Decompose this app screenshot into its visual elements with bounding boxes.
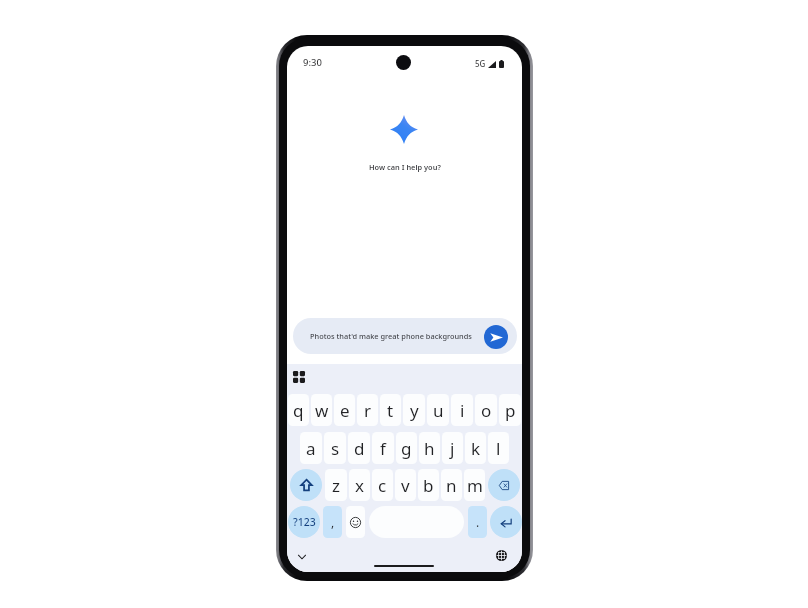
staticText: .: [476, 514, 480, 530]
staticText: ?123: [293, 515, 316, 529]
button[interactable]: Symbols: [288, 506, 320, 538]
button[interactable]: m: [464, 469, 485, 501]
button[interactable]: Send: [484, 325, 508, 349]
staticText: b: [423, 474, 434, 497]
button[interactable]: Space: [369, 506, 464, 538]
staticText: z: [332, 474, 340, 497]
staticText: 5G: [475, 58, 486, 69]
staticText: c: [378, 474, 387, 497]
button[interactable]: i: [451, 394, 473, 426]
staticText: l: [496, 437, 501, 460]
staticText: ,: [331, 514, 335, 530]
button[interactable]: e: [334, 394, 355, 426]
button[interactable]: j: [442, 432, 463, 464]
staticText: v: [401, 474, 410, 497]
staticText: 9:30: [303, 56, 322, 69]
staticText: u: [433, 399, 444, 422]
button[interactable]: k: [465, 432, 486, 464]
staticText: w: [315, 399, 329, 422]
staticText: r: [364, 399, 372, 422]
staticText: y: [410, 399, 419, 422]
button[interactable]: d: [348, 432, 370, 464]
staticText: h: [424, 437, 435, 460]
button[interactable]: y: [403, 394, 425, 426]
staticText: a: [306, 437, 316, 460]
button[interactable]: w: [311, 394, 332, 426]
button[interactable]: ,: [323, 506, 342, 538]
button[interactable]: Photos that'd make great phone backgroun…: [293, 318, 517, 354]
staticText: o: [481, 399, 492, 422]
button[interactable]: o: [475, 394, 497, 426]
button[interactable]: Enter: [490, 506, 522, 538]
button[interactable]: Change keyboard language: [492, 546, 510, 564]
button[interactable]: Hide keyboard: [293, 548, 311, 566]
button[interactable]: t: [380, 394, 401, 426]
staticText: g: [401, 437, 412, 460]
staticText: m: [467, 474, 483, 497]
button[interactable]: h: [419, 432, 440, 464]
staticText: t: [387, 399, 394, 422]
button[interactable]: .: [468, 506, 487, 538]
button[interactable]: Shift: [290, 469, 322, 501]
staticText: s: [331, 437, 340, 460]
button[interactable]: v: [395, 469, 416, 501]
button[interactable]: Emoji: [346, 506, 365, 538]
button[interactable]: n: [441, 469, 462, 501]
button[interactable]: q: [288, 394, 309, 426]
staticText: d: [354, 437, 365, 460]
button[interactable]: Backspace: [488, 469, 520, 501]
staticText: i: [460, 399, 465, 422]
button[interactable]: c: [372, 469, 393, 501]
staticText: f: [380, 437, 386, 460]
staticText: q: [293, 399, 304, 422]
button[interactable]: Keyboard toolbar: [289, 367, 309, 387]
button[interactable]: u: [427, 394, 449, 426]
button[interactable]: x: [349, 469, 370, 501]
staticText: n: [446, 474, 457, 497]
button[interactable]: r: [357, 394, 378, 426]
staticText: Photos that'd make great phone backgroun…: [310, 331, 472, 341]
button[interactable]: p: [499, 394, 521, 426]
button[interactable]: b: [418, 469, 439, 501]
button[interactable]: l: [488, 432, 509, 464]
staticText: p: [505, 399, 516, 422]
button[interactable]: s: [324, 432, 346, 464]
button[interactable]: z: [325, 469, 347, 501]
button[interactable]: f: [372, 432, 394, 464]
staticText: k: [471, 437, 481, 460]
staticText: x: [355, 474, 364, 497]
button[interactable]: a: [300, 432, 322, 464]
staticText: How can I help you?: [369, 162, 441, 172]
staticText: j: [450, 437, 455, 460]
button[interactable]: g: [396, 432, 417, 464]
staticText: e: [340, 399, 350, 422]
